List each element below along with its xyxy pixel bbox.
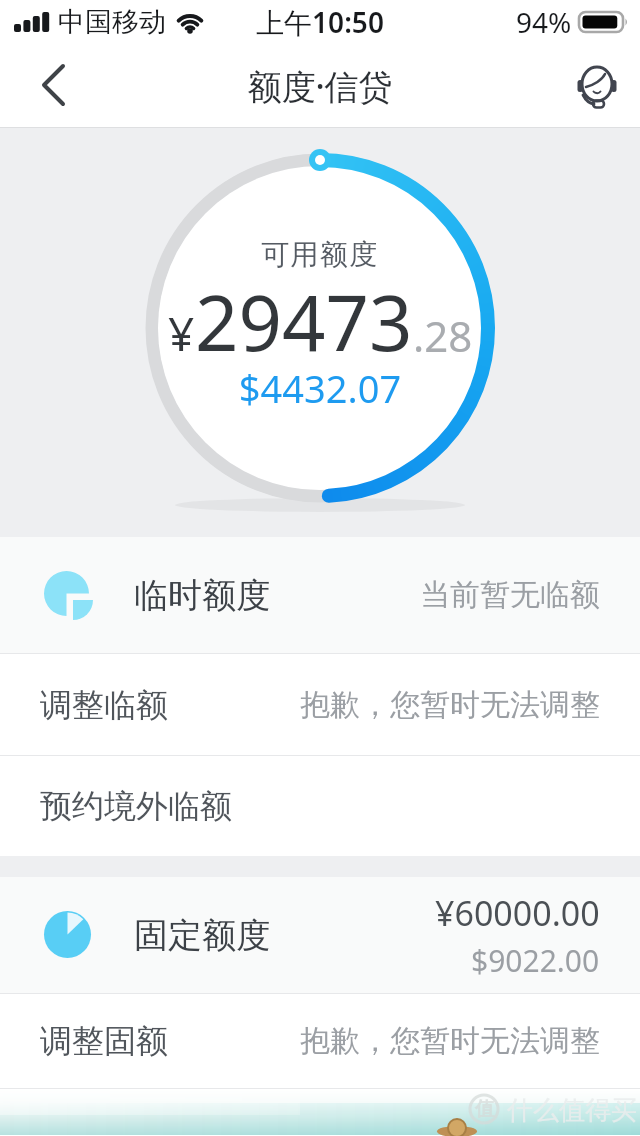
staticText: 抱歉，您暂时无法调整 bbox=[300, 686, 600, 724]
staticText: 临时额度 bbox=[134, 574, 270, 617]
staticText: 调整固额 bbox=[40, 1021, 168, 1061]
staticText: ¥ bbox=[168, 302, 195, 365]
staticText: $4432.07 bbox=[0, 362, 640, 414]
staticText: ¥60000.00 bbox=[435, 890, 600, 936]
staticText: 抱歉，您暂时无法调整 bbox=[300, 1022, 600, 1060]
staticText: 上午10:50 bbox=[0, 3, 640, 41]
button[interactable] bbox=[574, 62, 622, 110]
staticText: 可用额度 bbox=[0, 237, 640, 272]
button[interactable]: 临时额度 bbox=[0, 537, 640, 653]
staticText: 调整临额 bbox=[40, 685, 168, 725]
staticText: 额度·信贷 bbox=[0, 63, 640, 109]
staticText: 固定额度 bbox=[134, 914, 270, 957]
button[interactable]: 固定额度 bbox=[0, 877, 640, 993]
button[interactable]: 调整固额 bbox=[0, 994, 640, 1088]
staticText: 什么值得买 bbox=[507, 1094, 637, 1127]
staticText: 当前暂无临额 bbox=[420, 576, 600, 614]
button[interactable]: 调整临额 bbox=[0, 654, 640, 755]
staticText: 中国移动 bbox=[58, 5, 166, 39]
staticText: 预约境外临额 bbox=[40, 786, 232, 826]
staticText: 94% bbox=[516, 3, 572, 41]
staticText: .28 bbox=[413, 307, 473, 364]
staticText: 值 bbox=[475, 1097, 494, 1121]
button[interactable]: 预约境外临额 bbox=[0, 756, 640, 856]
staticText: 29473 bbox=[195, 270, 413, 374]
button[interactable] bbox=[30, 61, 80, 111]
button[interactable]: 值 bbox=[0, 1089, 640, 1135]
staticText: $9022.00 bbox=[471, 940, 600, 981]
